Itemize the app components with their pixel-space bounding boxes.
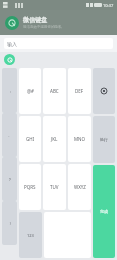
button[interactable]: 微信键盘	[0, 10, 117, 35]
button[interactable]: Delete	[93, 68, 115, 114]
button[interactable]: MNO	[68, 116, 91, 162]
staticText: ，	[8, 88, 12, 93]
button[interactable]: DEF	[68, 68, 91, 114]
staticText: 简洁高效不滥用你的隐私	[23, 25, 62, 29]
staticText: ？	[8, 177, 12, 182]
staticText: 换行	[100, 137, 108, 142]
button[interactable]: TUV	[43, 164, 66, 210]
button[interactable]: GHI	[19, 116, 41, 162]
staticText: WXYZ	[74, 184, 86, 190]
staticText: @#	[27, 88, 34, 94]
staticText: JKL	[51, 136, 58, 142]
staticText: TUV	[50, 184, 59, 190]
button[interactable]: 输入	[4, 38, 113, 49]
button[interactable]: @#	[19, 68, 41, 114]
staticText: GHI	[26, 136, 35, 142]
staticText: ！	[8, 221, 12, 226]
staticText: 完成	[100, 209, 108, 214]
button[interactable]: 换行	[93, 116, 115, 163]
staticText: 123	[27, 233, 34, 238]
staticText: MNO	[74, 136, 86, 142]
staticText: ABC	[50, 88, 59, 94]
staticText: DEF	[75, 88, 84, 94]
button[interactable]: WeChat keyboard	[4, 54, 15, 65]
button[interactable]: PQRS	[19, 164, 41, 210]
staticText: PQRS	[24, 184, 36, 190]
staticText: 微信键盘	[23, 16, 47, 24]
button[interactable]: ABC	[43, 68, 66, 114]
button[interactable]: ？	[2, 157, 17, 201]
button[interactable]: 完成	[93, 165, 115, 258]
button[interactable]: WXYZ	[68, 164, 91, 210]
staticText: 10:37	[103, 3, 114, 8]
staticText: 。	[8, 133, 12, 138]
staticText: 输入	[7, 41, 17, 47]
button[interactable]: 123	[19, 212, 42, 258]
button[interactable]: JKL	[43, 116, 66, 162]
